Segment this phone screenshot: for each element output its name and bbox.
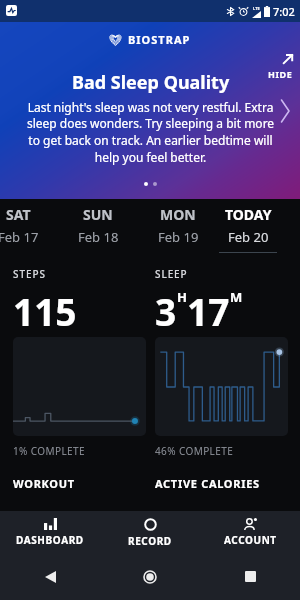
button[interactable]: ACCOUNT (200, 511, 300, 553)
staticText: HIDE (268, 68, 293, 80)
staticText: STEPS (13, 267, 46, 281)
staticText: BIOSTRAP (128, 32, 191, 47)
button[interactable]: SAT (0, 199, 58, 253)
staticText: SAT (6, 205, 31, 224)
other: Next (280, 100, 290, 122)
staticText: 46% COMPLETE (155, 444, 234, 458)
button[interactable]: DASHBOARD (0, 511, 100, 553)
staticText: 1% COMPLETE (13, 444, 85, 458)
button[interactable]: TODAY (218, 199, 278, 253)
staticText: LTE (253, 6, 260, 11)
button[interactable]: HIDE (268, 54, 293, 80)
button[interactable] (155, 337, 288, 436)
staticText: 7:02 (273, 4, 295, 19)
staticText: Last night's sleep was not very restful.… (24, 99, 277, 166)
staticText: Feb 17 (0, 228, 39, 246)
staticText: MON (160, 205, 196, 224)
staticText: 3 (155, 286, 177, 336)
button[interactable] (13, 337, 146, 436)
staticText: ACCOUNT (224, 533, 277, 547)
staticText: M (230, 288, 243, 306)
button[interactable]: Back (0, 553, 100, 600)
staticText: RECORD (128, 534, 172, 548)
staticText: Bad Sleep Quality (72, 70, 230, 95)
staticText: Feb 19 (158, 228, 199, 246)
button[interactable]: MON (138, 199, 218, 253)
staticText: Feb 18 (78, 228, 119, 246)
staticText: ACTIVE CALORIES (155, 476, 260, 491)
staticText: SUN (83, 205, 113, 224)
staticText: 17 (187, 286, 230, 336)
button[interactable]: Home (100, 553, 200, 600)
staticText: TODAY (225, 205, 272, 224)
button[interactable]: SUN (58, 199, 138, 253)
staticText: WORKOUT (13, 476, 75, 491)
staticText: 115 (13, 286, 77, 336)
staticText: Feb 20 (228, 228, 269, 246)
staticText: DASHBOARD (16, 533, 84, 547)
button[interactable]: RECORD (100, 511, 200, 553)
button[interactable]: Recents (200, 553, 300, 600)
staticText: H (177, 288, 187, 306)
staticText: SLEEP (155, 267, 188, 281)
